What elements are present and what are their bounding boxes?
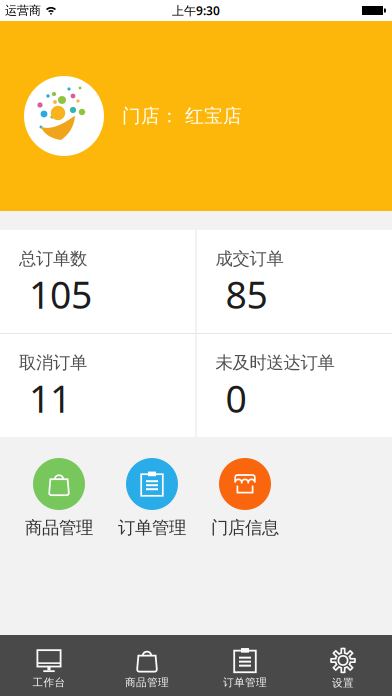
button[interactable]: 设置 <box>294 635 392 696</box>
staticText: 上午9:30 <box>172 2 220 18</box>
staticText: 11 <box>29 373 71 423</box>
staticText: 成交订单 <box>215 248 283 269</box>
button[interactable]: 订单管理 <box>196 635 294 696</box>
button[interactable]: 商品管理 <box>98 635 196 696</box>
staticText: 订单管理 <box>223 676 267 689</box>
staticText: 门店信息 <box>211 517 279 538</box>
staticText: 0 <box>225 373 246 423</box>
staticText: 总订单数 <box>19 248 87 269</box>
staticText: 105 <box>29 269 92 319</box>
staticText: 门店： 红宝店 <box>122 104 242 127</box>
button[interactable]: 商品管理 <box>14 458 104 538</box>
staticText: 设置 <box>332 676 354 689</box>
staticText: 运营商 <box>5 3 41 18</box>
staticText: 商品管理 <box>25 517 93 538</box>
staticText: 订单管理 <box>118 517 186 538</box>
button[interactable]: 订单管理 <box>107 458 197 538</box>
staticText: 取消订单 <box>19 352 87 373</box>
staticText: 未及时送达订单 <box>215 352 334 373</box>
button[interactable]: 工作台 <box>0 635 98 696</box>
staticText: 工作台 <box>32 676 65 689</box>
button[interactable]: 门店信息 <box>200 458 290 538</box>
staticText: 商品管理 <box>125 676 169 689</box>
staticText: 85 <box>225 269 267 319</box>
